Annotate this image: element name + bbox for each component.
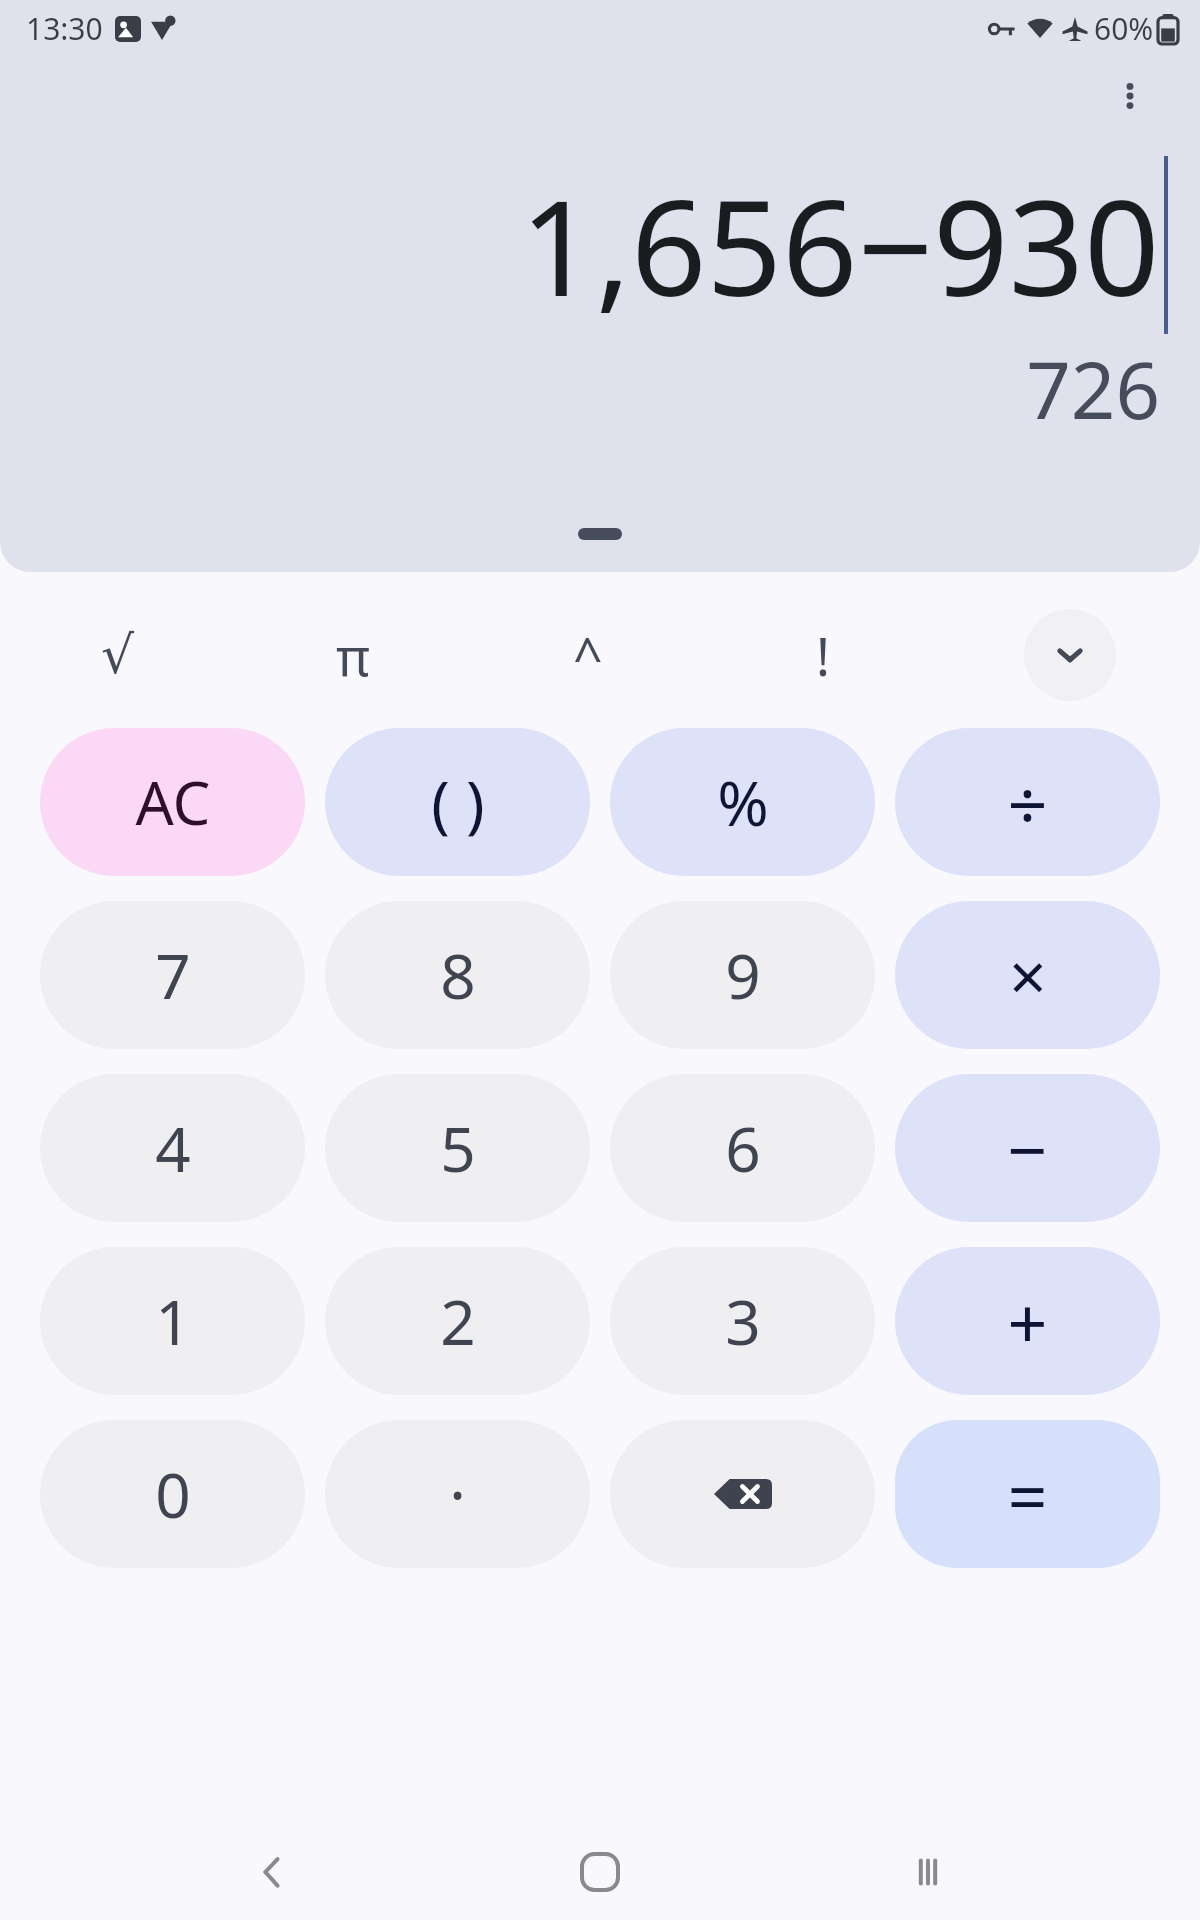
staticText: 1,656−930 [520, 155, 1160, 335]
button[interactable]: 9 [610, 901, 875, 1049]
staticText: ÷ [1007, 755, 1048, 850]
button[interactable]: % [610, 728, 875, 876]
button[interactable]: 6 [610, 1074, 875, 1222]
staticText: 9 [725, 933, 761, 1017]
staticText: 6 [725, 1106, 761, 1190]
button[interactable]: π [235, 600, 470, 710]
staticText: % [717, 760, 769, 844]
button[interactable]: Expand functions [1024, 609, 1116, 701]
button[interactable]: Collapse display [578, 528, 622, 540]
button[interactable]: 1 [40, 1247, 305, 1395]
button[interactable]: 0 [40, 1420, 305, 1568]
button[interactable]: 8 [325, 901, 590, 1049]
button[interactable]: Back [218, 1824, 328, 1920]
staticText: 5 [440, 1106, 476, 1190]
staticText: · [449, 1452, 466, 1536]
button[interactable]: ÷ [895, 728, 1160, 876]
staticText: + [1007, 1274, 1048, 1369]
staticText: − [1007, 1101, 1048, 1196]
button[interactable]: 5 [325, 1074, 590, 1222]
staticText: 7 [155, 933, 191, 1017]
staticText: 13:30 [26, 8, 103, 49]
button[interactable]: = [895, 1420, 1160, 1568]
staticText: = [1007, 1447, 1048, 1542]
staticText: 3 [725, 1279, 761, 1363]
staticText: ^ [573, 620, 603, 691]
staticText: 726 [1026, 336, 1160, 442]
staticText: √ [101, 625, 135, 686]
staticText: 0 [155, 1452, 191, 1536]
button[interactable]: · [325, 1420, 590, 1568]
button[interactable]: Home [545, 1824, 655, 1920]
staticText: 8 [440, 933, 476, 1017]
staticText: ! [816, 620, 830, 691]
button[interactable]: × [895, 901, 1160, 1049]
button[interactable]: ^ [470, 600, 705, 710]
button[interactable]: 7 [40, 901, 305, 1049]
staticText: AC [135, 761, 211, 843]
button[interactable]: 2 [325, 1247, 590, 1395]
button[interactable]: 3 [610, 1247, 875, 1395]
button[interactable]: AC [40, 728, 305, 876]
staticText: ( ) [431, 760, 485, 844]
button[interactable]: + [895, 1247, 1160, 1395]
staticText: π [336, 620, 370, 691]
button[interactable]: − [895, 1074, 1160, 1222]
button[interactable]: 4 [40, 1074, 305, 1222]
button[interactable]: ( ) [325, 728, 590, 876]
staticText: 1 [155, 1279, 191, 1363]
staticText: × [1009, 930, 1047, 1020]
button[interactable]: Backspace [610, 1420, 875, 1568]
staticText: 4 [155, 1106, 191, 1190]
button[interactable]: Recent apps [873, 1824, 983, 1920]
button[interactable]: √ [0, 600, 235, 710]
staticText: 60% [1094, 8, 1154, 49]
button[interactable]: ! [705, 600, 940, 710]
button[interactable]: More options [1096, 62, 1164, 130]
staticText: 2 [440, 1279, 476, 1363]
